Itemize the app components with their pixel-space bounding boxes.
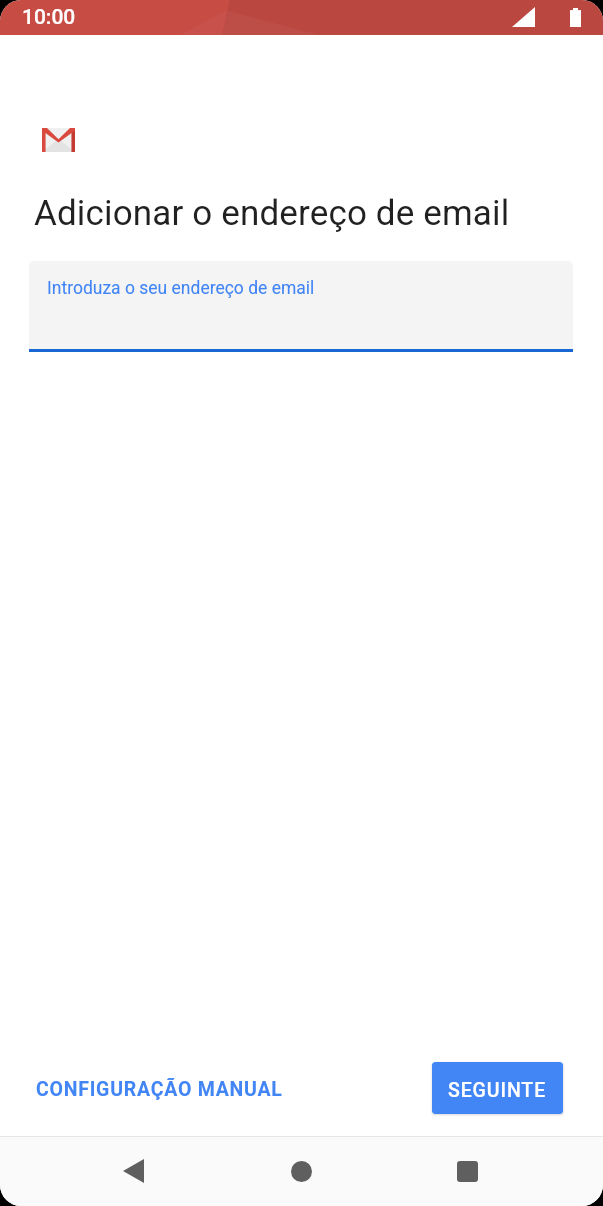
button[interactable]: Recent apps [427,1136,507,1206]
button[interactable]: SEGUINTE [432,1062,563,1114]
button[interactable]: CONFIGURAÇÃO MANUAL [21,1062,297,1114]
staticText: 10:00 [22,5,76,30]
button[interactable]: Back [93,1136,173,1206]
button[interactable]: Introduza o seu endereço de email [29,261,573,349]
staticText: Introduza o seu endereço de email [47,278,315,299]
staticText: SEGUINTE [448,1079,547,1102]
staticText: CONFIGURAÇÃO MANUAL [36,1078,283,1101]
button[interactable]: Home [261,1136,341,1206]
staticText: Adicionar o endereço de email [34,193,510,234]
